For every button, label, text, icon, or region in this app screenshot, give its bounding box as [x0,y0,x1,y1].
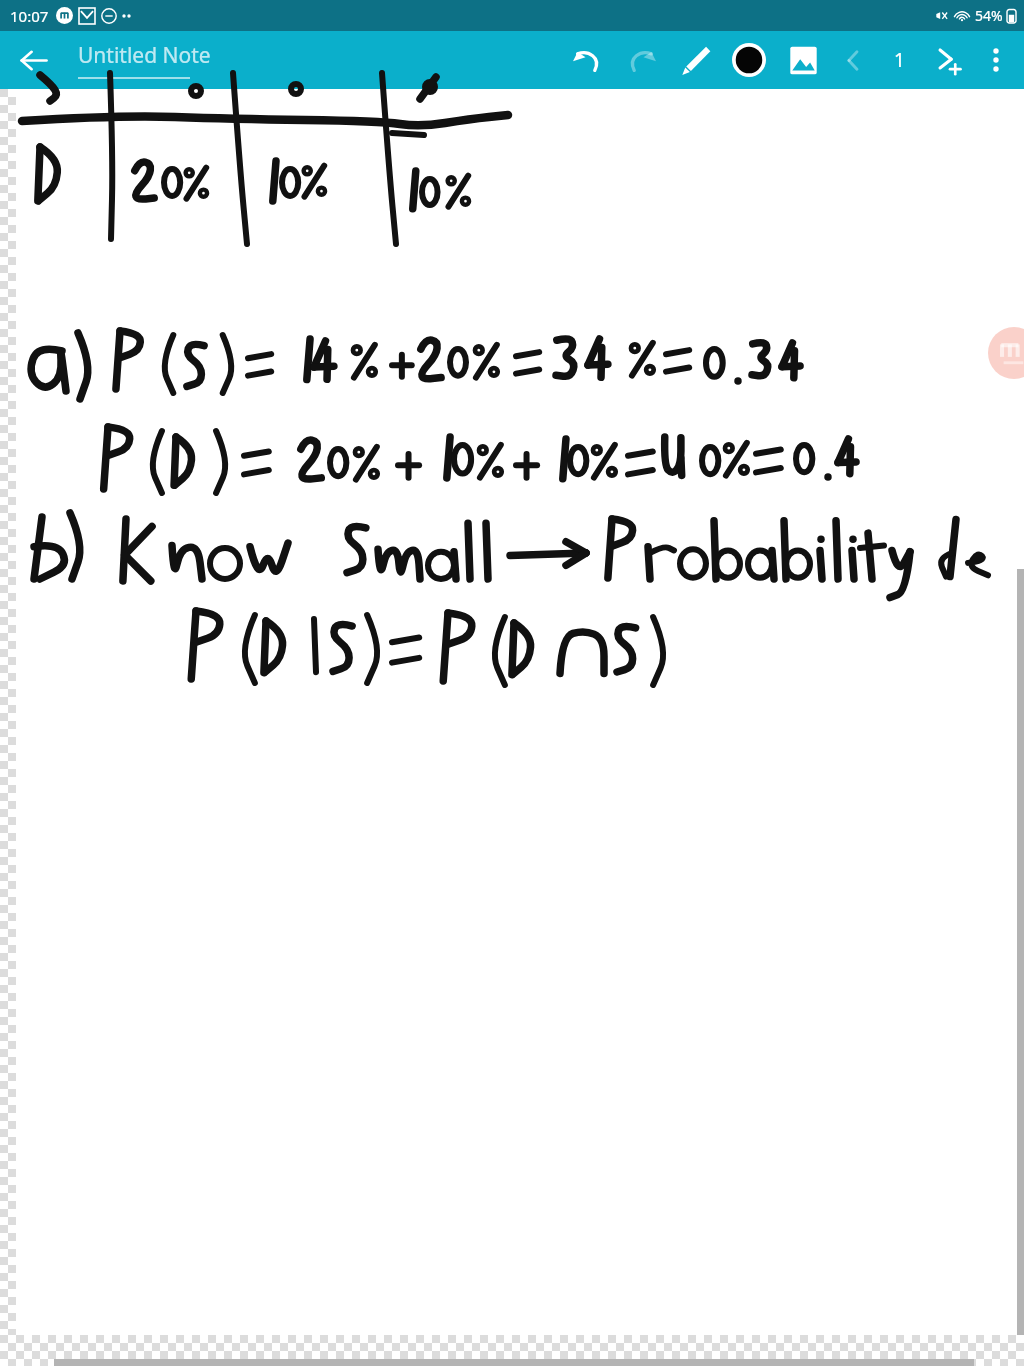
staticText: 54% [975,6,1003,25]
button[interactable]: Add page [922,35,972,85]
button[interactable]: Back [8,35,58,85]
button[interactable]: More options [972,36,1020,84]
button[interactable]: Redo [614,33,668,87]
button[interactable]: Recording indicator [988,327,1024,379]
button[interactable]: Untitled Note [78,41,211,79]
button[interactable]: Undo [560,33,614,87]
staticText: 1 [894,47,905,73]
button[interactable]: Previous page [830,37,876,83]
button[interactable]: Insert image [776,33,830,87]
staticText: 10:07 [10,6,49,26]
button[interactable]: Pen tool [668,33,722,87]
staticText: Untitled Note [78,41,211,70]
button[interactable]: Colour [722,33,776,87]
button[interactable]: 1 [876,37,922,83]
